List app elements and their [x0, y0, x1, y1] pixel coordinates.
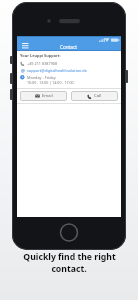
button[interactable]: Email: [20, 91, 67, 101]
staticText: Monday - Friday: [27, 75, 56, 80]
staticText: Quickly find the right: [23, 251, 116, 263]
staticText: 10:00 - 13:00 | 14:00 - 17:00: [27, 80, 74, 85]
button[interactable]: +49 211 8387908: [20, 61, 118, 66]
button[interactable]: @: [20, 68, 118, 73]
staticText: +49 211 8387908: [27, 61, 58, 66]
staticText: contact.: [51, 263, 87, 275]
staticText: Email: [42, 93, 53, 99]
button[interactable]: Monday - Friday: [20, 75, 118, 80]
button[interactable]: [19, 41, 31, 50]
staticText: Contact: [60, 44, 78, 50]
button[interactable]: Call: [71, 91, 118, 101]
staticText: Your Leuppi Support:: [20, 53, 61, 58]
staticText: @: [21, 68, 25, 73]
staticText: support@digitalhealthsolution.de: [27, 68, 87, 73]
staticText: Call: [94, 93, 102, 99]
